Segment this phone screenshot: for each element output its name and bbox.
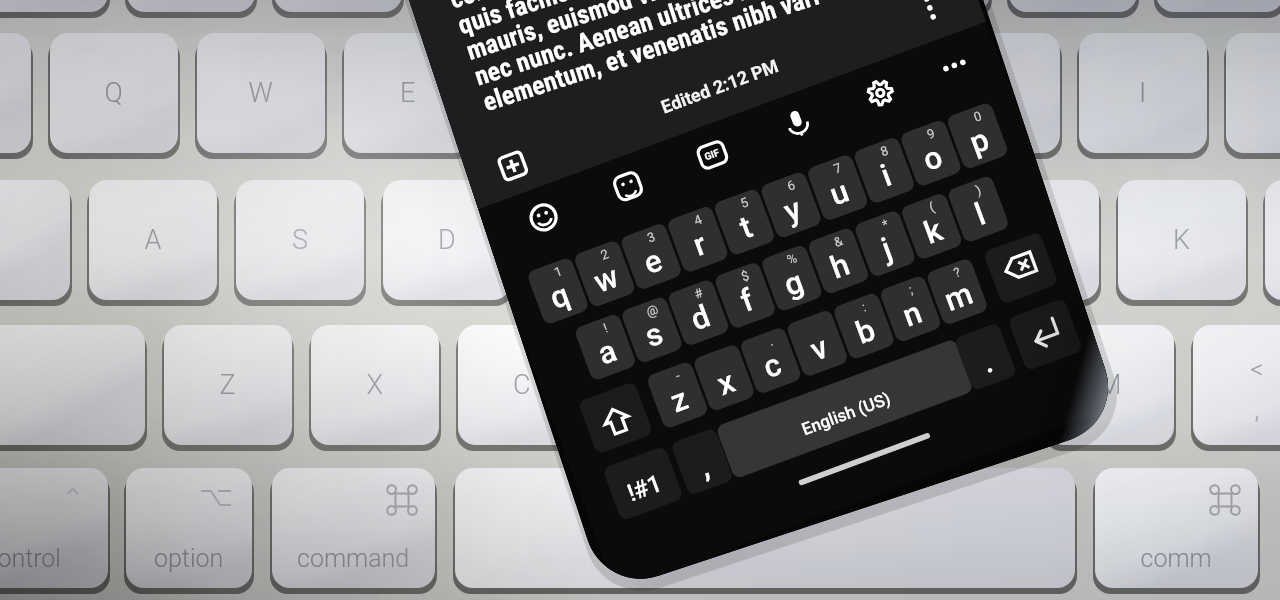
button[interactable]: Phone with on-screen keyboard on a deskt… [0, 0, 1280, 600]
